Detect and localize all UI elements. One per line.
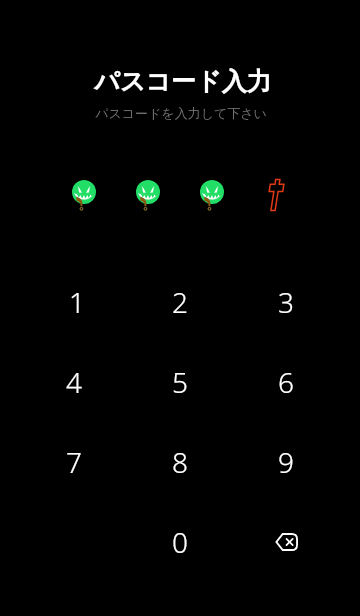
other: Delete (275, 533, 298, 551)
button[interactable]: 2 (127, 262, 233, 342)
staticText: 6 (278, 363, 294, 401)
staticText: 4 (66, 363, 82, 401)
staticText: 3 (278, 283, 294, 321)
button[interactable]: Delete (233, 502, 339, 582)
button[interactable]: 6 (233, 342, 339, 422)
staticText: 8 (172, 443, 188, 481)
button[interactable]: 9 (233, 422, 339, 502)
button[interactable]: 1 (21, 262, 127, 342)
button[interactable]: 3 (233, 262, 339, 342)
staticText: 0 (172, 523, 188, 561)
staticText: 9 (278, 443, 294, 481)
staticText: パスコード入力 (94, 66, 272, 97)
button[interactable]: 4 (21, 342, 127, 422)
staticText: パスコードを入力して下さい (95, 105, 267, 121)
staticText: 2 (172, 283, 188, 321)
staticText: 5 (172, 363, 188, 401)
button[interactable]: 8 (127, 422, 233, 502)
button[interactable]: 0 (127, 502, 233, 582)
staticText: 1 (69, 283, 85, 321)
button[interactable]: 7 (21, 422, 127, 502)
button[interactable]: 5 (127, 342, 233, 422)
staticText: 7 (66, 443, 82, 481)
